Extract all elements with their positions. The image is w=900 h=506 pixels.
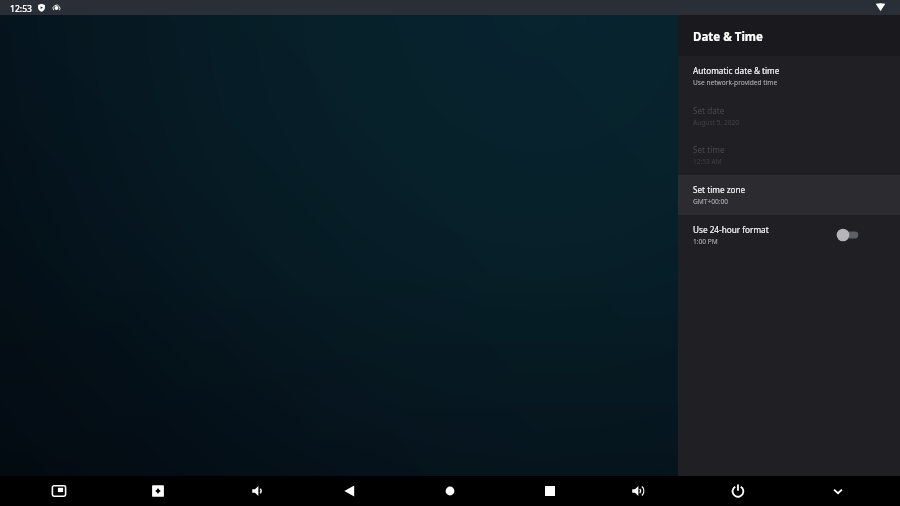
button[interactable]: Volume up [616, 476, 660, 506]
staticText: August 5, 2020 [693, 118, 740, 127]
staticText: 12:53 AM [693, 157, 722, 166]
staticText: Use network-provided time [693, 78, 778, 87]
button[interactable]: Collapse [816, 476, 860, 506]
button[interactable]: Recent apps [528, 476, 572, 506]
button[interactable]: Set date [678, 96, 900, 136]
staticText: GMT+00:00 [693, 197, 729, 206]
staticText: Set date [693, 105, 725, 116]
staticText: Date & Time [693, 29, 763, 45]
button[interactable]: Power [716, 476, 760, 506]
button[interactable]: Volume down [236, 476, 280, 506]
staticText: Automatic date & time [693, 65, 780, 76]
button[interactable]: Use 24-hour format [678, 215, 900, 255]
button[interactable]: Automatic date & time [678, 56, 900, 96]
button[interactable]: Picture in picture [37, 476, 81, 506]
button[interactable]: Date & Time [678, 15, 900, 56]
staticText: Set time zone [693, 184, 746, 195]
button[interactable]: Set time [678, 135, 900, 175]
button[interactable]: Use 24-hour format toggle [830, 226, 860, 244]
staticText: Use 24-hour format [693, 224, 769, 235]
staticText: Set time [693, 144, 725, 155]
staticText: 1:00 PM [693, 237, 718, 246]
button[interactable]: Set time zone [678, 175, 900, 215]
button[interactable]: Back [327, 476, 371, 506]
staticText: 12:53 [10, 3, 33, 15]
button[interactable]: Keyboard [136, 476, 180, 506]
button[interactable]: Home [428, 476, 472, 506]
